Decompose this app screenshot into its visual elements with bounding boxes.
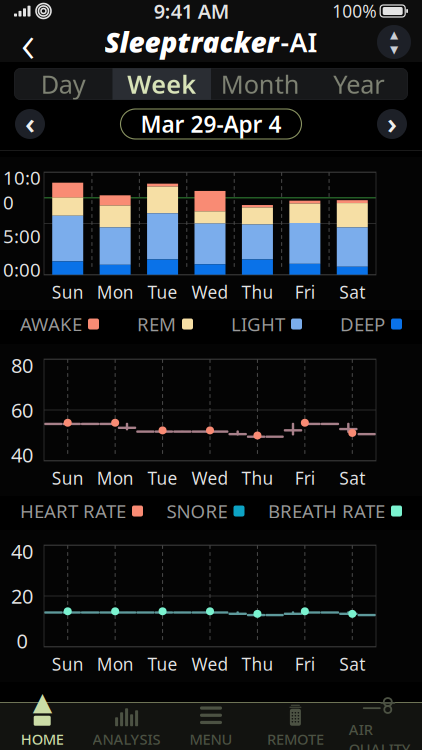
staticText: 10:00 (3, 165, 41, 215)
staticText: ▲ (390, 28, 398, 40)
staticText: Mar 29-Apr 4 (140, 109, 281, 139)
staticText: -AI (280, 24, 317, 60)
button[interactable]: ANALYSIS (84, 703, 169, 750)
staticText: ‹ (21, 7, 35, 77)
staticText: Wed (191, 466, 228, 489)
staticText: Tue (148, 652, 178, 675)
staticText: 40 (11, 538, 33, 565)
staticText: SNORE (166, 499, 227, 523)
button[interactable]: Week (112, 68, 211, 100)
staticText: Wed (191, 652, 228, 675)
staticText: Sun (52, 280, 84, 303)
staticText: Sun (52, 466, 84, 489)
staticText: Thu (241, 652, 273, 675)
staticText: HOME (21, 729, 64, 749)
button[interactable]: ▲ (0, 703, 84, 750)
staticText: Sat (339, 652, 365, 675)
staticText: 0 (16, 627, 27, 654)
staticText: AWAKE (20, 312, 82, 336)
staticText: 40 (11, 441, 33, 468)
staticText: Tue (148, 280, 178, 303)
staticText: Sat (339, 280, 365, 303)
staticText: Week (127, 67, 196, 101)
staticText: Sleeptracker (104, 23, 278, 61)
staticText: Fri (295, 466, 315, 489)
staticText: Mon (97, 652, 134, 675)
staticText: ▲ (33, 687, 52, 716)
staticText: Tue (148, 466, 178, 489)
button[interactable]: Mar 29-Apr 4 (120, 109, 301, 139)
staticText: ‹ (25, 103, 35, 142)
button[interactable]: Year (309, 68, 408, 100)
button[interactable]: MENU (169, 703, 253, 750)
staticText: 80 (11, 352, 33, 379)
staticText: LIGHT (231, 312, 285, 336)
staticText: Month (221, 67, 300, 101)
staticText: Sun (52, 652, 84, 675)
button[interactable]: REMOTE (253, 703, 338, 750)
button[interactable]: Month (211, 68, 309, 100)
staticText: 0:00 (3, 257, 41, 282)
button[interactable]: Day (14, 68, 112, 100)
staticText: MENU (189, 729, 232, 749)
staticText: Sat (339, 466, 365, 489)
staticText: Thu (241, 280, 273, 303)
staticText: HEART RATE (20, 499, 126, 523)
staticText: AIR QUALITY (349, 719, 411, 750)
staticText: 20 (11, 583, 33, 609)
button[interactable]: Next week (370, 104, 414, 144)
button[interactable]: AIR QUALITY (338, 703, 422, 750)
button[interactable]: Back (6, 20, 50, 64)
staticText: Mon (97, 466, 134, 489)
staticText: ANALYSIS (93, 729, 161, 749)
staticText: 9:41 AM (154, 0, 230, 24)
staticText: REMOTE (267, 729, 324, 749)
staticText: Thu (241, 466, 273, 489)
staticText: BREATH RATE (268, 499, 385, 523)
staticText: ▼ (390, 43, 398, 56)
button[interactable]: Previous week (8, 104, 52, 144)
staticText: REM (137, 312, 176, 336)
staticText: 100% (332, 0, 376, 22)
button[interactable]: Adjust (372, 20, 416, 64)
staticText: 5:00 (3, 223, 41, 248)
staticText: › (387, 103, 397, 142)
staticText: Mon (97, 280, 134, 303)
staticText: Fri (295, 652, 315, 675)
staticText: Wed (191, 280, 228, 303)
staticText: Day (41, 67, 86, 101)
staticText: Fri (295, 280, 315, 303)
staticText: 60 (11, 397, 33, 423)
staticText: Year (333, 67, 384, 101)
staticText: DEEP (340, 312, 385, 336)
